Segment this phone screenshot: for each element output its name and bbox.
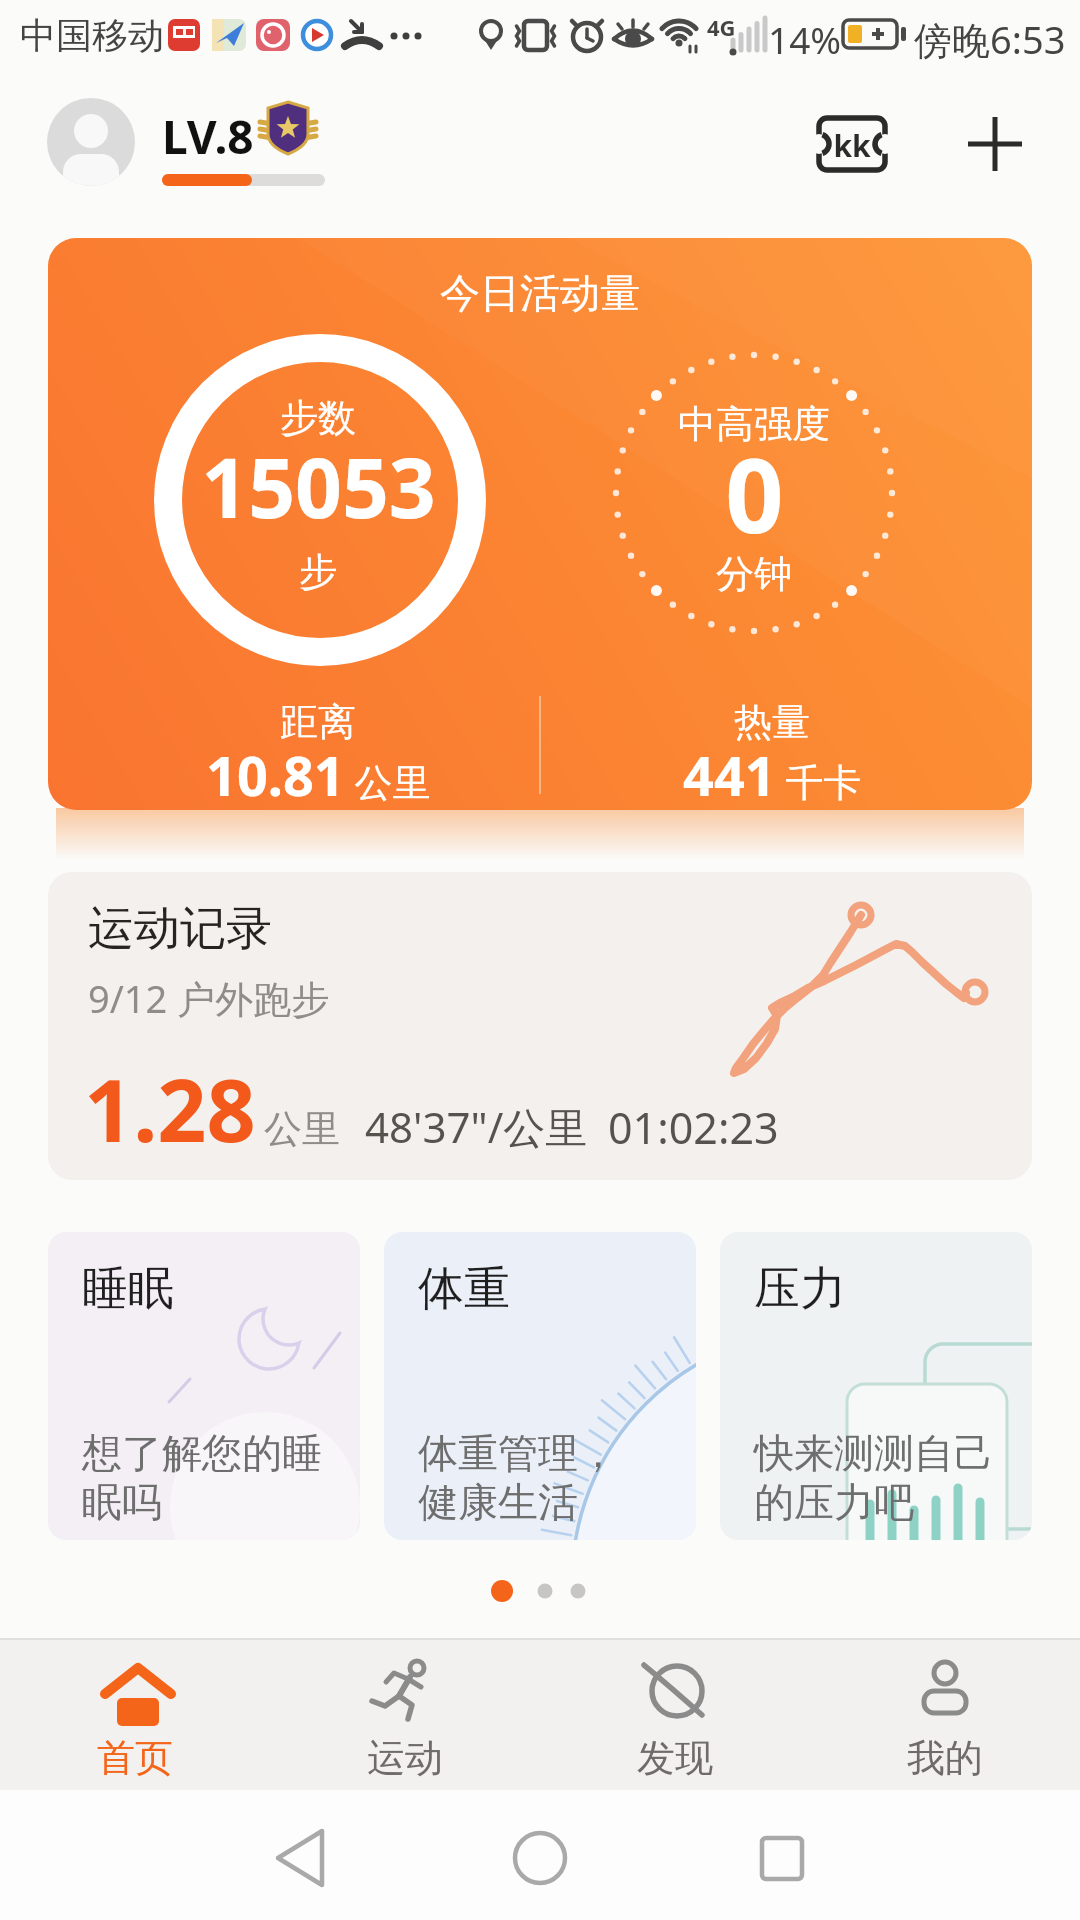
staticText: 9/12 户外跑步 bbox=[88, 972, 330, 1024]
staticText: 今日活动量 bbox=[440, 268, 640, 318]
staticText: 分钟 bbox=[716, 550, 792, 598]
staticText: LV.8 bbox=[162, 105, 254, 168]
staticText: 快来测测自己 的压力吧 bbox=[754, 1428, 995, 1528]
button[interactable] bbox=[700, 1800, 860, 1910]
staticText: 体重 bbox=[418, 1260, 510, 1318]
staticText: 想了解您的睡 眠吗 bbox=[82, 1428, 323, 1528]
staticText: 0 bbox=[725, 424, 784, 563]
staticText: 中国移动 bbox=[20, 13, 164, 58]
staticText: 01:02:23 bbox=[608, 1098, 779, 1157]
staticText: 4G bbox=[707, 12, 736, 42]
staticText: 14% bbox=[768, 14, 842, 64]
staticText: 我的 bbox=[907, 1734, 983, 1782]
staticText: 15053 bbox=[201, 430, 436, 542]
button[interactable] bbox=[240, 1800, 400, 1910]
staticText: 中高强度 bbox=[678, 400, 830, 448]
button[interactable]: 压力 bbox=[720, 1232, 1032, 1540]
staticText: kk bbox=[833, 125, 871, 166]
button[interactable] bbox=[460, 1800, 620, 1910]
staticText: 441 千卡 bbox=[683, 738, 862, 810]
button[interactable]: 首页 bbox=[0, 1638, 270, 1790]
staticText: 压力 bbox=[754, 1260, 846, 1318]
staticText: 1.28 bbox=[84, 1050, 256, 1167]
staticText: 体重管理， 健康生活 bbox=[418, 1428, 618, 1528]
button[interactable]: 运动记录 bbox=[48, 872, 1032, 1180]
staticText: 步 bbox=[299, 548, 337, 596]
button[interactable] bbox=[960, 108, 1030, 180]
staticText: 运动 bbox=[367, 1734, 443, 1782]
staticText: 发现 bbox=[637, 1734, 713, 1782]
staticText: 公里 bbox=[264, 1105, 340, 1153]
button[interactable]: 睡眠 bbox=[48, 1232, 360, 1540]
button[interactable] bbox=[47, 98, 135, 186]
staticText: 10.81 公里 bbox=[206, 738, 431, 810]
button[interactable]: 我的 bbox=[810, 1638, 1080, 1790]
staticText: 傍晚6:53 bbox=[914, 13, 1066, 65]
button[interactable]: 今日活动量 bbox=[48, 238, 1032, 810]
staticText: 睡眠 bbox=[82, 1260, 174, 1318]
staticText: 首页 bbox=[97, 1734, 173, 1782]
staticText: 步数 bbox=[280, 394, 356, 442]
button[interactable]: 体重 bbox=[384, 1232, 696, 1540]
staticText: 热量 bbox=[734, 698, 810, 746]
staticText: 运动记录 bbox=[88, 900, 272, 958]
button[interactable]: 运动 bbox=[270, 1638, 540, 1790]
staticText: 48'37"/公里 bbox=[365, 1098, 588, 1155]
button[interactable]: kk bbox=[810, 108, 894, 180]
staticText: 距离 bbox=[280, 698, 356, 746]
button[interactable]: 发现 bbox=[540, 1638, 810, 1790]
